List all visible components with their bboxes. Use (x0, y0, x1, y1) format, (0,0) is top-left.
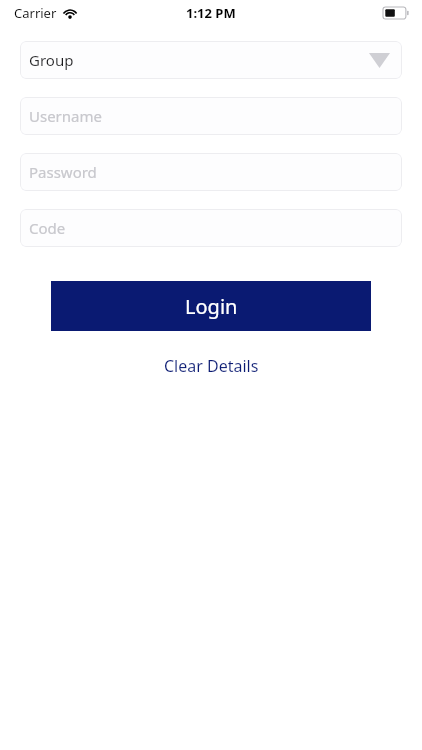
button[interactable]: Code (20, 209, 402, 247)
staticText: Group (29, 50, 74, 70)
staticText: 1:12 PM (186, 4, 236, 22)
button[interactable]: Login (51, 281, 371, 331)
staticText: Password (29, 162, 97, 182)
staticText: Code (29, 218, 66, 238)
button[interactable]: Password (20, 153, 402, 191)
staticText: Username (29, 106, 102, 126)
button[interactable]: Username (20, 97, 402, 135)
staticText: Login (185, 293, 238, 320)
staticText: Clear Details (164, 355, 259, 377)
button[interactable]: Clear Details (152, 351, 271, 381)
staticText: Carrier (14, 4, 57, 22)
button[interactable]: Group (20, 41, 402, 79)
